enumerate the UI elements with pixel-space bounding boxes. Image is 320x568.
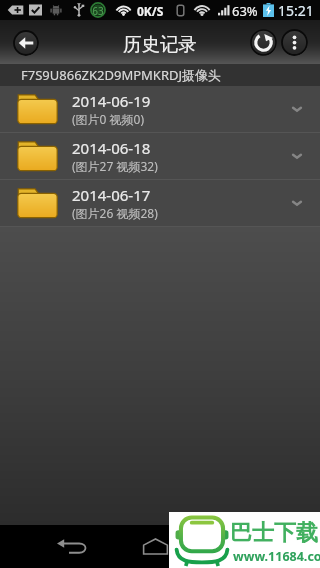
staticText: (图片27 视频32) [72, 158, 158, 174]
button[interactable]: Back [12, 29, 39, 56]
button[interactable]: 2014-06-17 [0, 180, 320, 226]
staticText: 2014-06-17 [72, 185, 151, 205]
staticText: 历史记录 [123, 33, 197, 56]
button[interactable]: 2014-06-19 [0, 86, 320, 132]
staticText: F7S9U866ZK2D9MPMKRDJ摄像头 [21, 66, 222, 84]
staticText: 0K/S [137, 3, 164, 19]
button[interactable]: 2014-06-18 [0, 133, 320, 179]
button[interactable]: Home [129, 525, 181, 568]
button[interactable]: Back [46, 525, 98, 568]
button[interactable]: Refresh [249, 28, 277, 56]
button[interactable]: More options [280, 28, 308, 56]
staticText: 63 [90, 4, 106, 18]
staticText: 2014-06-19 [72, 91, 151, 111]
staticText: 2014-06-18 [72, 138, 151, 158]
staticText: (图片26 视频28) [72, 205, 158, 221]
staticText: 63% [232, 2, 258, 20]
staticText: 巴士下载 [230, 519, 318, 547]
staticText: (图片0 视频0) [72, 111, 145, 127]
staticText: www.11684.com [233, 548, 320, 565]
button[interactable]: Recents [215, 525, 267, 568]
staticText: 15:21 [278, 1, 314, 20]
